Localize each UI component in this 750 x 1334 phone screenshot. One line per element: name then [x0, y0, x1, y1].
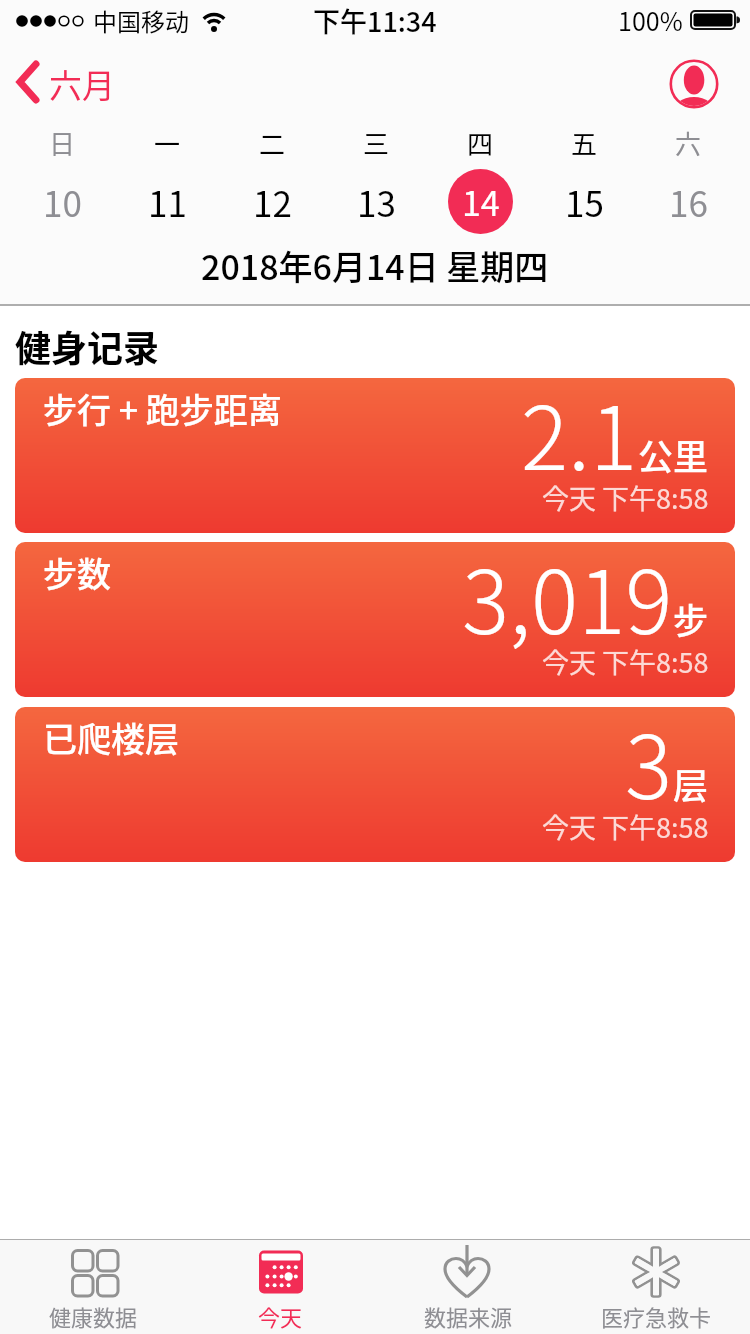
staticText: 2.1	[521, 378, 638, 495]
staticText: 已爬楼层	[43, 713, 179, 762]
button[interactable]: 健康数据	[0, 1244, 187, 1334]
staticText: 四	[467, 124, 494, 160]
staticText: 今天	[258, 1300, 303, 1332]
button[interactable]: 步数	[15, 542, 735, 697]
staticText: 二	[259, 124, 286, 160]
staticText: 今天 下午8:58	[542, 807, 709, 846]
staticText: 数据来源	[424, 1300, 513, 1332]
staticText: 3,019	[462, 542, 673, 659]
staticText: 层	[673, 758, 709, 809]
staticText: 11	[148, 176, 187, 227]
staticText: 医疗急救卡	[601, 1300, 712, 1332]
staticText: 中国移动	[93, 3, 189, 38]
button[interactable]	[669, 59, 719, 109]
button[interactable]: 12	[220, 167, 324, 235]
staticText: 16	[669, 176, 708, 227]
button[interactable]: 步行 + 跑步距离	[15, 378, 735, 533]
staticText: 步数	[43, 548, 111, 597]
staticText: 日	[49, 124, 76, 160]
button[interactable]: 今天	[187, 1244, 374, 1334]
button[interactable]: 16	[636, 167, 740, 235]
staticText: 步	[673, 593, 709, 644]
button[interactable]: 六月	[16, 60, 115, 108]
button[interactable]: 13	[324, 167, 428, 235]
staticText: 健身记录	[15, 320, 160, 368]
staticText: 步行 + 跑步距离	[43, 384, 282, 433]
staticText: 100%	[618, 2, 683, 38]
button[interactable]: 15	[532, 167, 636, 235]
staticText: 3	[625, 707, 673, 824]
staticText: 公里	[638, 429, 709, 480]
button[interactable]: 10	[10, 167, 115, 235]
staticText: 六	[675, 124, 702, 160]
staticText: 2018年6月14日 星期四	[201, 241, 549, 287]
staticText: 10	[43, 176, 82, 227]
staticText: 五	[571, 124, 598, 160]
staticText: 下午11:34	[313, 1, 437, 40]
staticText: 三	[363, 124, 390, 160]
button[interactable]: 11	[115, 167, 220, 235]
staticText: 一	[154, 124, 181, 160]
button[interactable]: 已爬楼层	[15, 707, 735, 862]
staticText: 14	[462, 177, 500, 226]
button[interactable]: 数据来源	[374, 1244, 562, 1334]
staticText: 今天 下午8:58	[542, 642, 709, 681]
button[interactable]: 医疗急救卡	[562, 1244, 750, 1334]
staticText: 13	[357, 176, 396, 227]
staticText: 健康数据	[49, 1300, 138, 1332]
staticText: 12	[253, 176, 292, 227]
button[interactable]: 14	[428, 167, 532, 235]
staticText: 今天 下午8:58	[542, 478, 709, 517]
staticText: 六月	[49, 60, 115, 108]
staticText: 15	[565, 176, 604, 227]
